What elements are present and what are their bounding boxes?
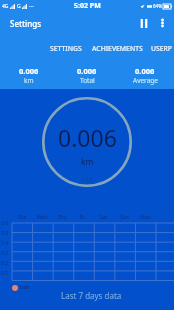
staticText: 0.3 [1, 250, 9, 257]
staticText: Last 7 days data [61, 290, 122, 301]
button[interactable]: 0.006 [58, 55, 116, 89]
staticText: km [24, 76, 34, 85]
button[interactable]: 0.006 [116, 55, 174, 89]
staticText: 4G [2, 3, 9, 10]
staticText: ··· [29, 2, 34, 10]
button[interactable] [12, 285, 18, 291]
staticText: 5:02 PM [74, 1, 101, 11]
staticText: 0.2 [1, 260, 9, 267]
staticText: 0.02 [82, 176, 93, 183]
button[interactable]: Pause [134, 13, 154, 33]
staticText: Tue [12, 214, 32, 221]
staticText: Settings [10, 18, 42, 29]
staticText: Sun [114, 214, 135, 221]
staticText: km [81, 156, 94, 168]
staticText: 0.006 [19, 66, 39, 76]
staticText: Thu [52, 214, 72, 221]
button[interactable]: More options [154, 15, 170, 31]
staticText: G [17, 3, 21, 10]
staticText: Wed [32, 214, 52, 221]
button[interactable]: ACHIEVEMENTS [92, 44, 143, 53]
staticText: 64% [153, 3, 162, 9]
staticText: 0.5 [1, 230, 9, 237]
staticText: Sat [93, 214, 114, 221]
staticText: 0.1 [1, 270, 9, 277]
staticText: Dist [20, 284, 30, 291]
staticText: 0.006 [58, 122, 117, 153]
staticText: Total [80, 76, 95, 85]
staticText: 0.4 [1, 240, 9, 247]
staticText: 0.6 [1, 220, 9, 227]
staticText: 0.006 [135, 66, 155, 76]
button[interactable]: SETTINGS [50, 44, 82, 53]
staticText: Fri [72, 214, 93, 221]
button[interactable]: USERP [151, 44, 172, 53]
staticText: Mon [135, 214, 156, 221]
staticText: Average [133, 76, 158, 85]
button[interactable]: 0.006 [0, 55, 58, 89]
staticText: 0.006 [77, 66, 97, 76]
